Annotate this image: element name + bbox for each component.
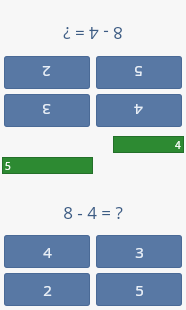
staticText: 4 — [175, 138, 181, 152]
button[interactable]: 3 — [4, 94, 90, 127]
button[interactable]: 4 — [4, 235, 90, 268]
staticText: 5 — [5, 159, 11, 173]
button[interactable]: 4 — [113, 136, 184, 153]
staticText: 4 — [134, 100, 143, 120]
button[interactable]: 5 — [96, 56, 182, 89]
staticText: 8 - 4 = ? — [63, 22, 123, 45]
button[interactable]: 5 — [96, 273, 182, 306]
staticText: 4 — [43, 242, 52, 262]
staticText: 5 — [134, 62, 143, 82]
staticText: 2 — [43, 280, 52, 300]
button[interactable]: 4 — [96, 94, 182, 127]
button[interactable]: 2 — [4, 273, 90, 306]
staticText: 3 — [42, 100, 51, 120]
button[interactable]: 3 — [96, 235, 182, 268]
button[interactable]: 5 — [2, 157, 93, 174]
staticText: 2 — [42, 62, 51, 82]
staticText: 3 — [135, 242, 144, 262]
button[interactable]: 2 — [4, 56, 90, 89]
staticText: 5 — [135, 280, 144, 300]
staticText: 8 - 4 = ? — [63, 201, 123, 224]
